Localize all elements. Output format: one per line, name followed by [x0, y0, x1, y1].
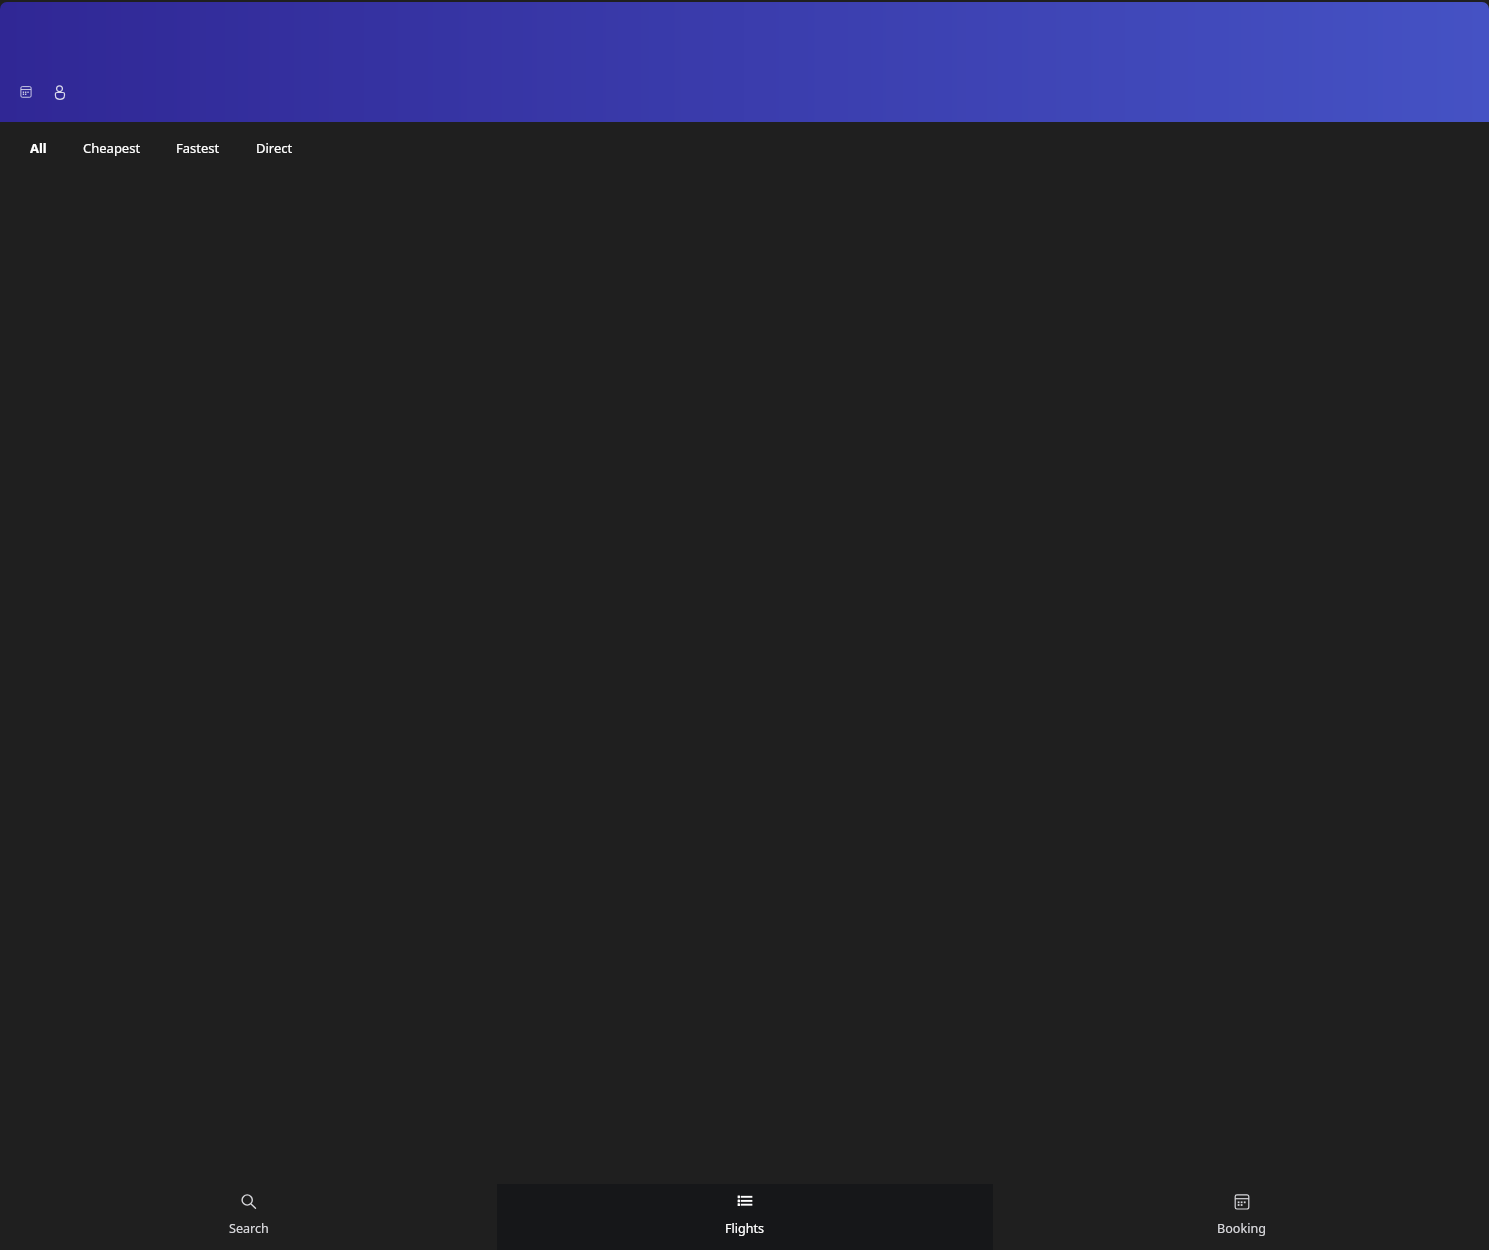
staticText: Search [229, 1220, 269, 1237]
staticText: Booking [1217, 1220, 1266, 1237]
button[interactable]: Search [0, 1184, 497, 1250]
button[interactable]: Account [46, 79, 72, 105]
button[interactable]: Cheapest [83, 122, 141, 173]
button[interactable]: All [30, 122, 47, 173]
staticText: Direct [256, 139, 293, 157]
staticText: Flights [725, 1220, 765, 1237]
button[interactable]: Direct [256, 122, 293, 173]
staticText: Fastest [176, 139, 220, 157]
staticText: All [30, 139, 47, 157]
button[interactable]: Booking [993, 1184, 1489, 1250]
button[interactable]: Flights [497, 1184, 993, 1250]
button[interactable]: Calendar [13, 79, 39, 105]
button[interactable]: Fastest [176, 122, 220, 173]
staticText: Cheapest [83, 139, 141, 157]
